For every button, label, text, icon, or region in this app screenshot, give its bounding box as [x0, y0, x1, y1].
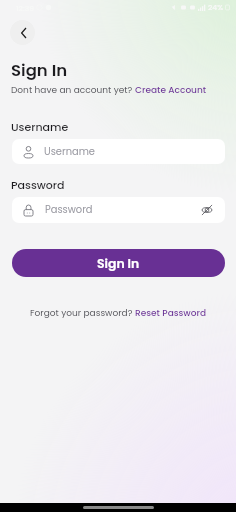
- button[interactable]: Username: [12, 139, 225, 164]
- staticText: Forgot your password?: [30, 307, 135, 320]
- staticText: Sign In: [97, 255, 140, 272]
- staticText: Sign In: [11, 59, 68, 82]
- staticText: Dont have an account yet?: [11, 84, 135, 97]
- staticText: Password: [45, 203, 93, 217]
- staticText: Username: [44, 145, 95, 159]
- button[interactable]: Back: [10, 20, 35, 45]
- staticText: Username: [11, 119, 69, 134]
- button[interactable]: Sign In: [12, 249, 225, 277]
- button[interactable]: Create Account: [135, 84, 207, 97]
- button[interactable]: Show password: [200, 203, 214, 217]
- button[interactable]: Reset Password: [135, 307, 207, 320]
- staticText: Password: [11, 177, 65, 192]
- staticText: 24%: [208, 2, 224, 12]
- button[interactable]: Password: [12, 197, 225, 223]
